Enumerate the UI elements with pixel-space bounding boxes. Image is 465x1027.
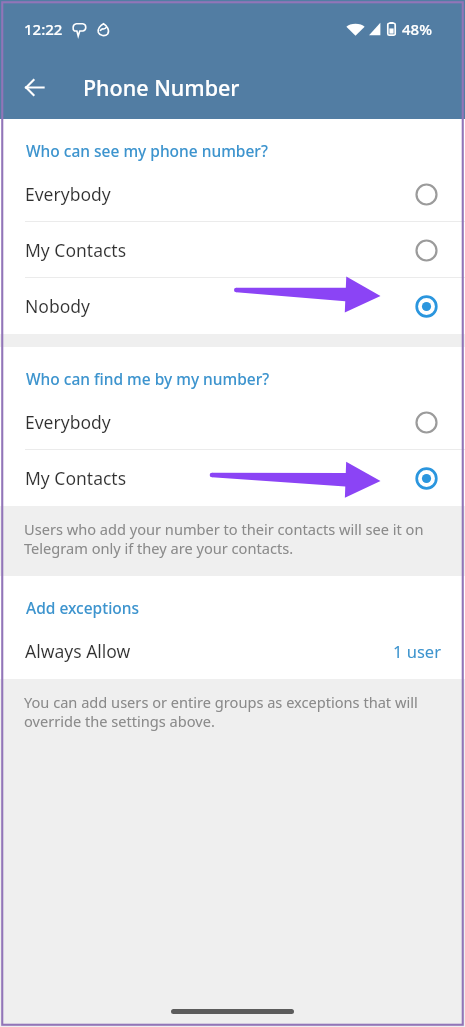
staticText: Users who add your number to their conta… [24,519,451,558]
staticText: Add exceptions [26,597,140,618]
staticText: My Contacts [25,466,127,490]
staticText: Everybody [25,410,111,434]
staticText: 1 user [393,640,441,662]
button[interactable]: Everybody [0,394,465,450]
staticText: Who can see my phone number? [26,140,268,161]
staticText: You can add users or entire groups as ex… [24,692,451,731]
button[interactable]: My Contacts [0,222,465,278]
staticText: 12:22 [24,19,63,39]
staticText: Who can find me by my number? [26,368,270,389]
button[interactable]: My Contacts [0,450,465,506]
staticText: Everybody [25,182,111,206]
staticText: My Contacts [25,238,127,262]
button[interactable]: Everybody [0,166,465,222]
button[interactable]: Back [11,64,57,110]
staticText: 48% [402,19,432,39]
button[interactable]: Always Allow [0,623,465,679]
staticText: Always Allow [25,639,131,663]
button[interactable]: Nobody [0,278,465,334]
staticText: Phone Number [83,73,240,102]
staticText: Nobody [25,294,90,318]
